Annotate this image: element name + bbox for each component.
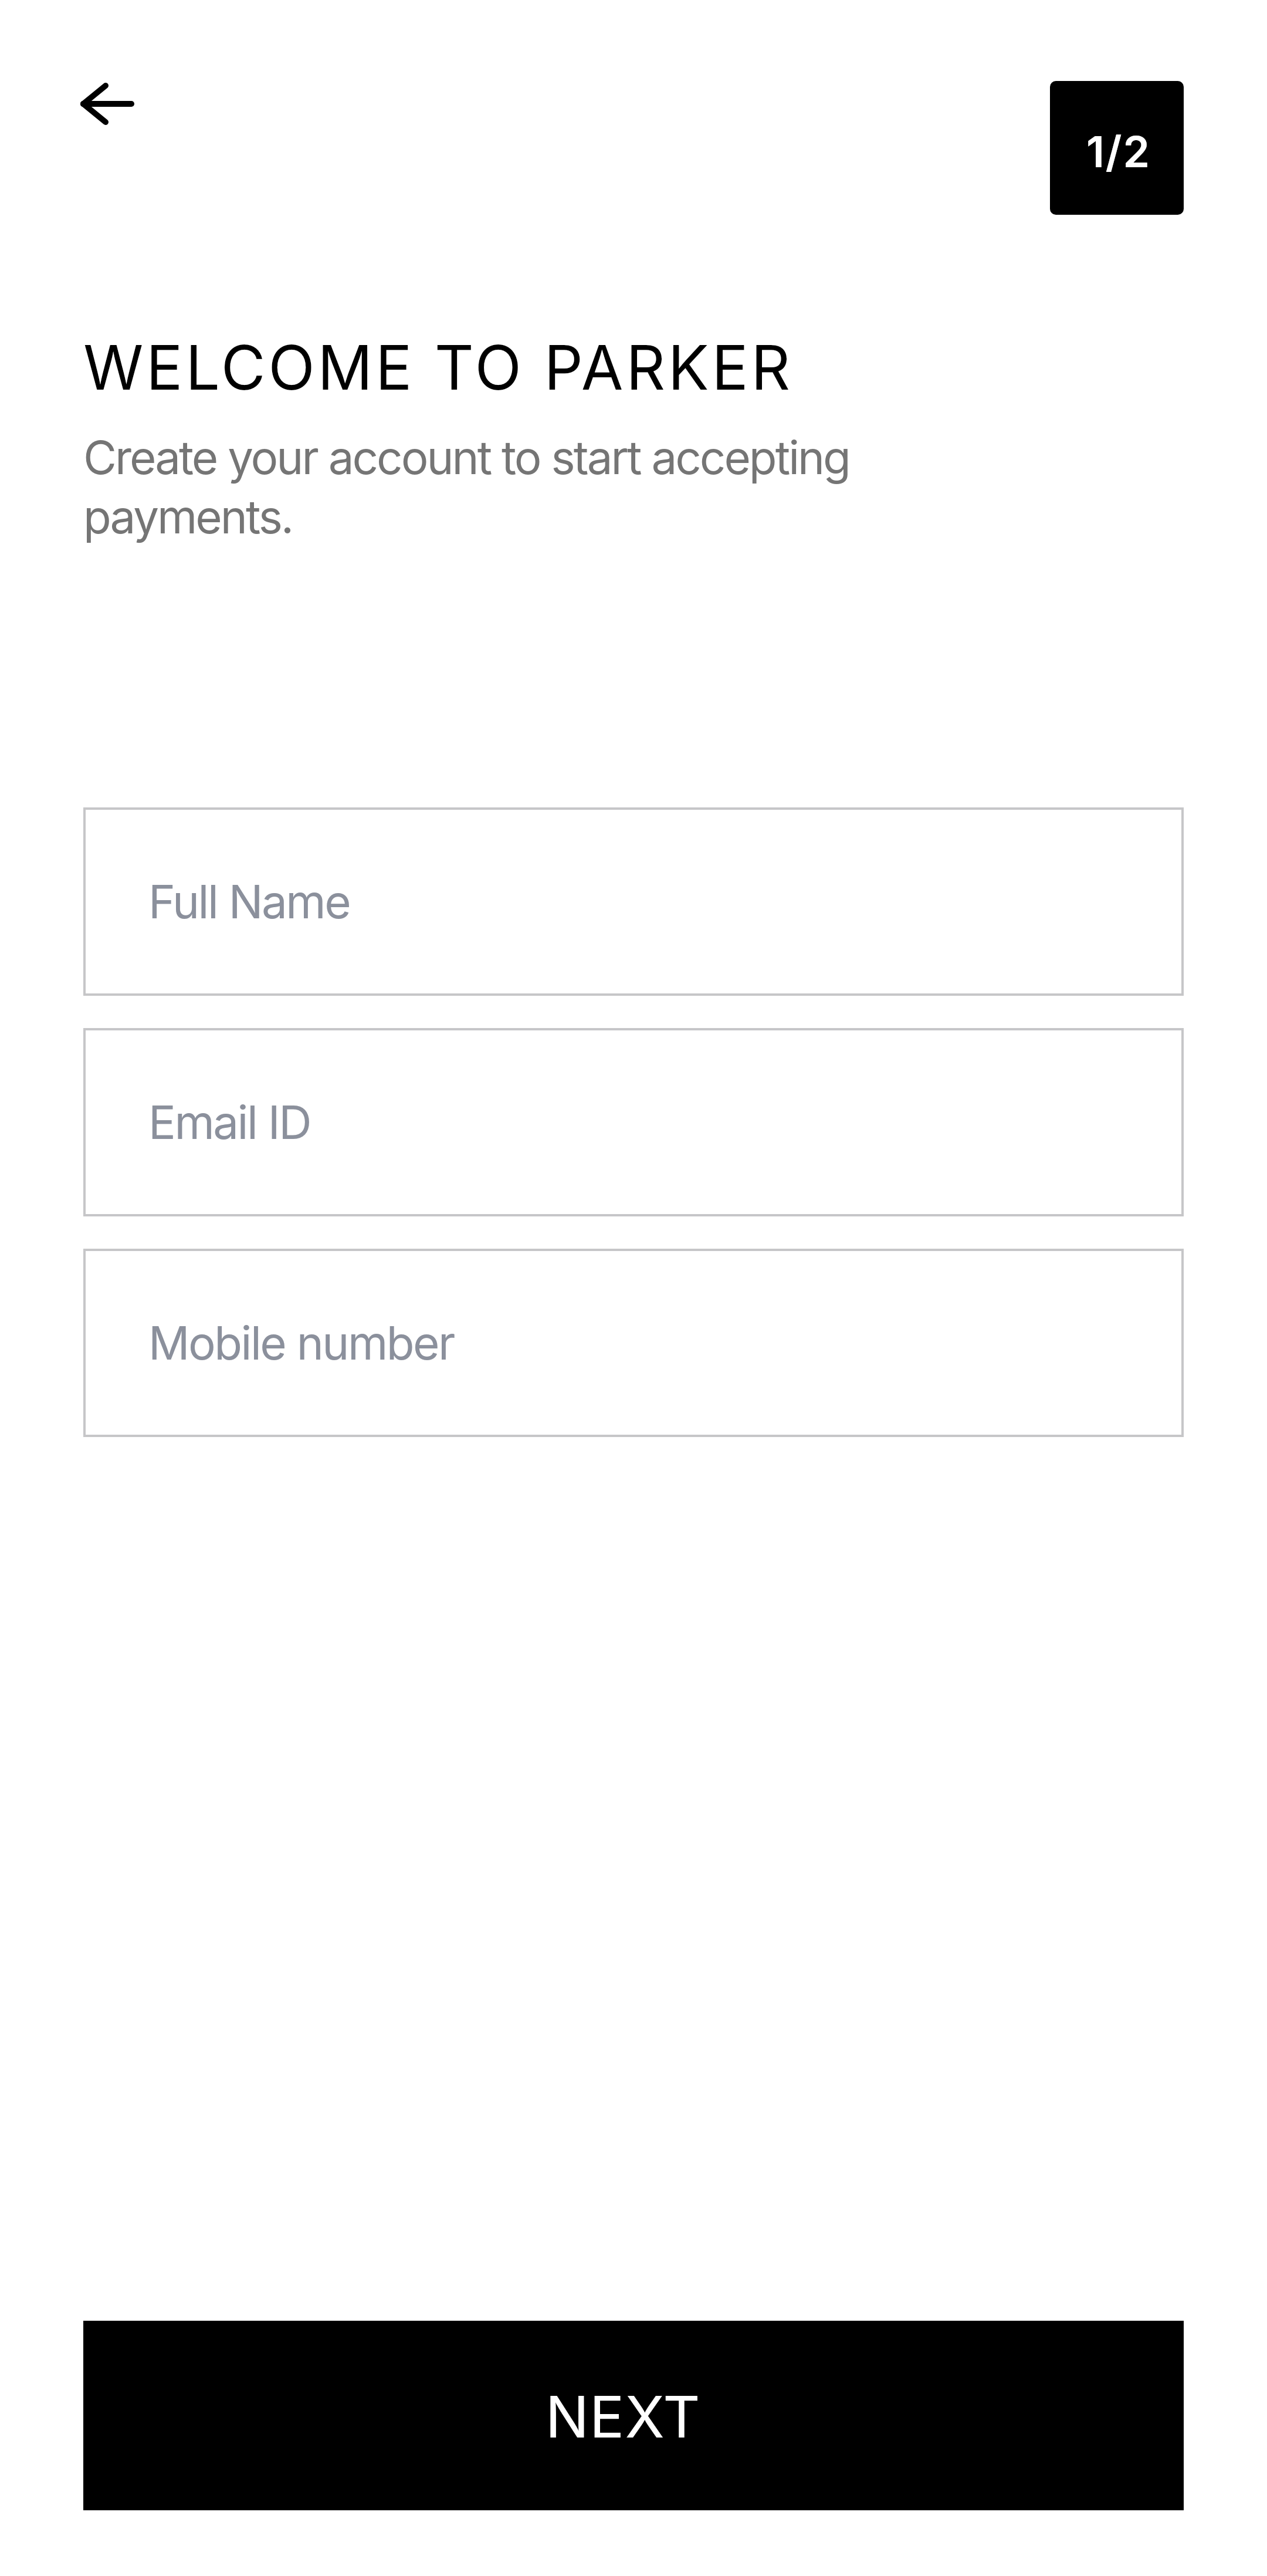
- staticText: NEXT: [546, 2382, 701, 2452]
- staticText: Mobile number: [148, 1315, 454, 1370]
- button[interactable]: 1/2: [1050, 81, 1184, 215]
- button[interactable]: Email ID: [83, 1028, 1184, 1216]
- staticText: Email ID: [148, 1094, 310, 1150]
- button[interactable]: Back: [28, 48, 139, 160]
- button[interactable]: NEXT: [83, 2321, 1184, 2510]
- staticText: 1/2: [1086, 126, 1151, 177]
- staticText: Create your account to start accepting p…: [83, 430, 899, 545]
- button[interactable]: Mobile number: [83, 1249, 1184, 1437]
- button[interactable]: Full Name: [83, 807, 1184, 996]
- staticText: Full Name: [148, 874, 350, 929]
- staticText: WELCOME TO PARKER: [83, 330, 793, 404]
